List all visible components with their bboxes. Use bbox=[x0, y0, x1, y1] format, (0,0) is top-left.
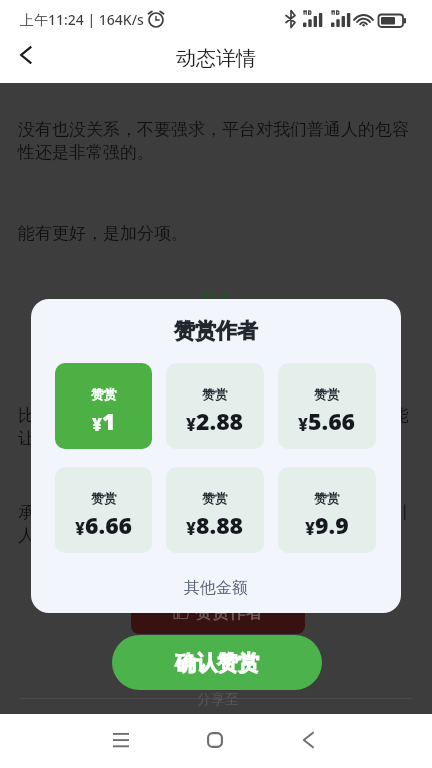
staticText: ¥ bbox=[92, 413, 102, 436]
staticText: ¥ bbox=[75, 517, 85, 540]
button[interactable]: 赞赏 bbox=[55, 467, 152, 553]
staticText: 04 bbox=[0, 282, 432, 317]
staticText: 1 bbox=[102, 405, 116, 436]
staticText: 6.66 bbox=[85, 509, 133, 540]
staticText: 能有更好，是加分项。 bbox=[18, 223, 188, 244]
staticText: 8.88 bbox=[196, 509, 244, 540]
button[interactable]: Back bbox=[8, 37, 44, 73]
staticText: 赞赏 bbox=[91, 386, 117, 402]
button[interactable]: Recent apps bbox=[97, 716, 145, 764]
staticText: ¥ bbox=[186, 413, 196, 436]
staticText: 承认自己是个普通人，其实是一种智慧，不会被指引 人生的焦虑所困扰住。 bbox=[18, 502, 409, 546]
button[interactable]: 赞赏作者 bbox=[131, 591, 305, 634]
staticText: 赞赏作者 bbox=[31, 318, 401, 344]
staticText: 2.88 bbox=[196, 405, 244, 436]
staticText: ¥ bbox=[298, 413, 308, 436]
staticText: 动态详情 bbox=[176, 46, 256, 71]
staticText: 9.9 bbox=[315, 509, 349, 540]
staticText: 确认赞赏 bbox=[175, 650, 259, 676]
staticText: 分享至 bbox=[197, 691, 239, 709]
staticText: 赞赏 bbox=[314, 386, 340, 402]
staticText: 赞赏 bbox=[91, 490, 117, 506]
button[interactable]: 赞赏 bbox=[55, 363, 152, 449]
staticText: 赞赏 bbox=[202, 386, 228, 402]
staticText: 5.66 bbox=[308, 405, 356, 436]
staticText: 赞赏 bbox=[202, 490, 228, 506]
staticText: ¥ bbox=[305, 517, 315, 540]
button[interactable]: Home bbox=[191, 716, 239, 764]
button[interactable]: 其他金额 bbox=[172, 574, 260, 602]
button[interactable]: 确认赞赏 bbox=[112, 635, 322, 690]
staticText: 没有也没关系，不要强求，平台对我们普通人的包容 性还是非常强的。 bbox=[18, 119, 409, 163]
button[interactable]: 赞赏 bbox=[278, 467, 376, 553]
staticText: ¥ bbox=[186, 517, 196, 540]
staticText: 赞赏 bbox=[314, 490, 340, 506]
button[interactable]: Back bbox=[284, 716, 332, 764]
button[interactable]: 赞赏 bbox=[278, 363, 376, 449]
staticText: 上午11:24 | 164K/s bbox=[20, 10, 144, 29]
button[interactable]: 赞赏 bbox=[166, 363, 264, 449]
staticText: 比如说普通人想要逆袭，大概率是要踩中风口，才能 让自己的人生有了更多的可能。 bbox=[18, 405, 409, 449]
staticText: 赞赏作者 bbox=[195, 602, 263, 623]
button[interactable]: 赞赏 bbox=[166, 467, 264, 553]
